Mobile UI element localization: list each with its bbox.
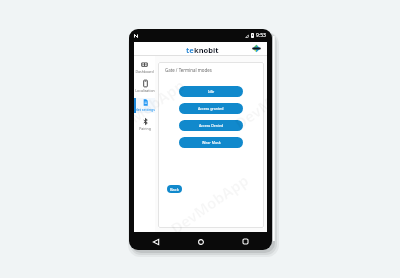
staticText: te: [186, 45, 194, 55]
staticText: Dashboard: [135, 69, 154, 74]
staticText: DevMobApp: [134, 75, 188, 143]
staticText: Access Denied: [199, 123, 224, 128]
button[interactable]: Dashboard: [134, 60, 155, 75]
staticText: knobit: [194, 45, 219, 55]
staticText: Gate / Terminal modes: [165, 67, 212, 73]
button[interactable]: Profile: [252, 44, 261, 53]
button[interactable]: Net settings: [134, 98, 155, 113]
button[interactable]: Idle: [179, 86, 243, 97]
staticText: Pairing: [139, 126, 151, 131]
staticText: Net settings: [135, 107, 155, 112]
staticText: DevMobApp: [166, 170, 252, 232]
staticText: 9:53: [256, 32, 266, 39]
staticText: DevMobApp: [230, 65, 267, 133]
staticText: Wear Mask: [202, 140, 221, 145]
staticText: Access granted: [198, 106, 224, 111]
button[interactable]: Back: [150, 236, 161, 247]
button[interactable]: Back: [167, 185, 182, 193]
button[interactable]: Pairing: [134, 117, 155, 132]
button[interactable]: Home: [195, 236, 206, 247]
button[interactable]: Localisation: [134, 79, 155, 94]
button[interactable]: Access Denied: [179, 120, 243, 131]
button[interactable]: Access granted: [179, 103, 243, 114]
button[interactable]: Recents: [240, 236, 251, 247]
staticText: Back: [170, 187, 179, 192]
staticText: Idle: [208, 89, 215, 94]
staticText: Localisation: [135, 88, 155, 93]
button[interactable]: Wear Mask: [179, 137, 243, 148]
